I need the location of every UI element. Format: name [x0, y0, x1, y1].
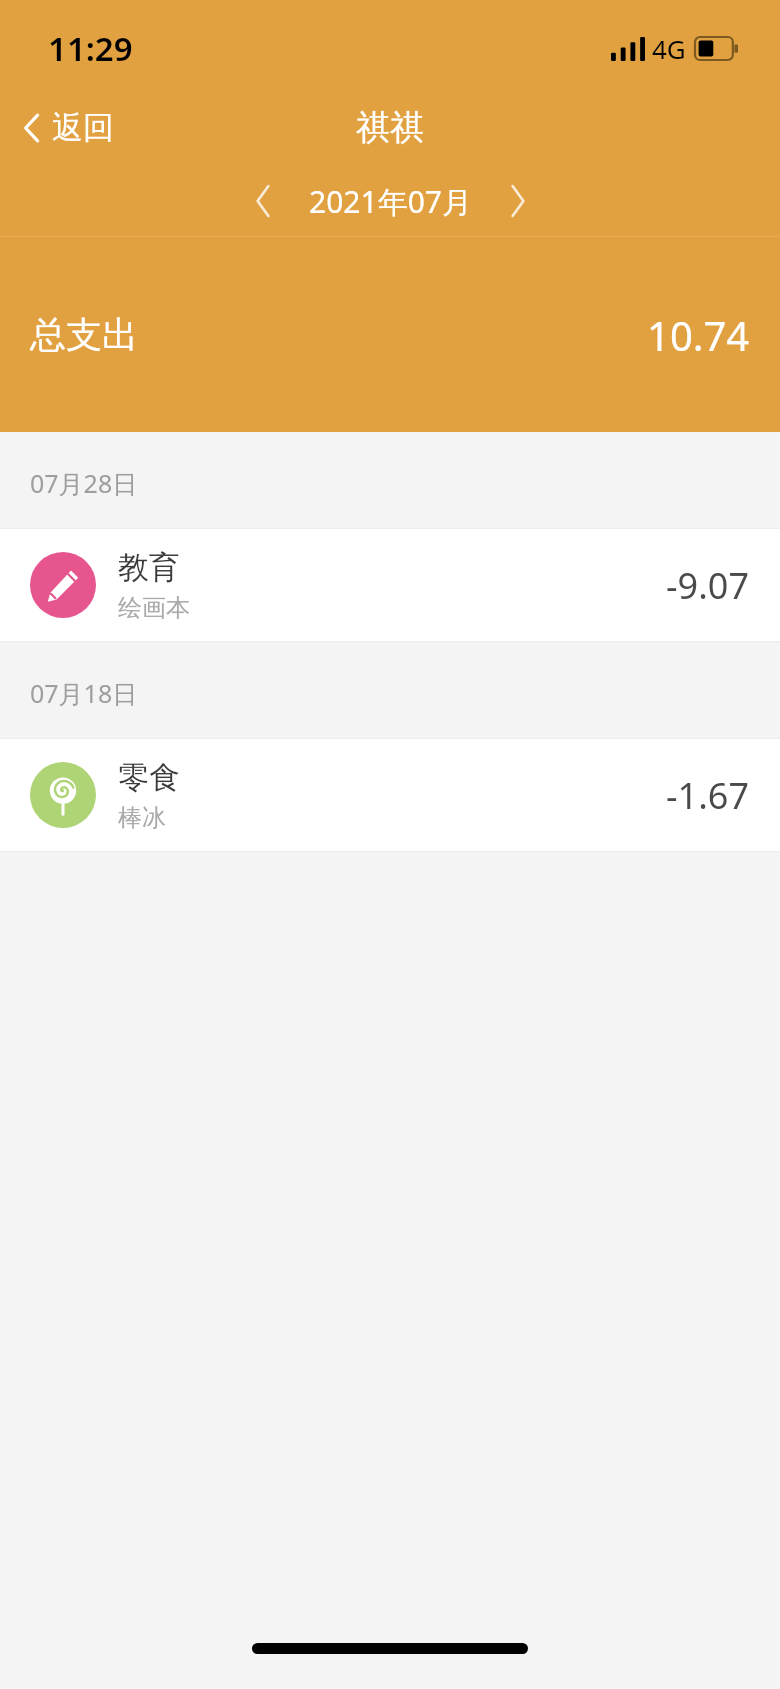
staticText: 总支出: [30, 312, 138, 357]
staticText: 4G: [652, 31, 686, 66]
staticText: 返回: [52, 108, 114, 147]
staticText: 07月18日: [30, 676, 138, 710]
button[interactable]: 教育: [0, 529, 780, 641]
staticText: 10.74: [647, 308, 750, 362]
staticText: 祺祺: [356, 106, 424, 149]
staticText: 11:29: [48, 26, 133, 71]
staticText: 零食: [118, 758, 180, 797]
staticText: 棒冰: [118, 803, 166, 833]
button[interactable]: 总支出: [0, 237, 780, 432]
staticText: 07月28日: [30, 466, 138, 500]
button[interactable]: Previous month: [235, 173, 291, 229]
staticText: 绘画本: [118, 593, 190, 623]
button[interactable]: Next month: [490, 173, 546, 229]
staticText: -9.07: [666, 561, 750, 610]
button[interactable]: 零食: [0, 739, 780, 851]
staticText: 2021年07月: [309, 181, 472, 222]
staticText: 教育: [118, 548, 180, 587]
button[interactable]: 返回: [14, 100, 122, 155]
staticText: -1.67: [666, 771, 750, 820]
